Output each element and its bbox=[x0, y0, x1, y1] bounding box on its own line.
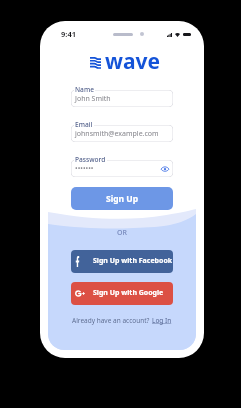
staticText: Already have an account? bbox=[72, 316, 152, 325]
staticText: Sign Up with Facebook bbox=[93, 256, 173, 266]
other: Show password bbox=[161, 166, 169, 172]
staticText: Sign Up with Google bbox=[93, 288, 164, 298]
staticText: OR bbox=[117, 228, 127, 238]
button[interactable]: Sign up with Facebook bbox=[71, 250, 173, 273]
staticText: 9:41 bbox=[61, 29, 76, 39]
other: Sign up with Facebook bbox=[75, 256, 82, 267]
staticText: Name bbox=[75, 85, 94, 94]
staticText: John Smith bbox=[75, 94, 111, 104]
staticText: Password bbox=[75, 155, 106, 164]
staticText: wave bbox=[105, 47, 161, 76]
staticText: Sign Up bbox=[106, 193, 139, 205]
button[interactable]: johnsmith@example.com bbox=[71, 125, 173, 142]
button[interactable]: ••••••• bbox=[71, 160, 173, 177]
other: Cellular signal bbox=[167, 33, 172, 37]
button[interactable]: John Smith bbox=[71, 90, 173, 107]
other: Wi-Fi bbox=[175, 33, 180, 37]
button[interactable]: Sign up with Google bbox=[71, 282, 173, 305]
other: Sign up with Google bbox=[75, 288, 86, 299]
staticText: johnsmith@example.com bbox=[75, 129, 159, 139]
staticText: Log In bbox=[152, 316, 172, 325]
button[interactable]: Already have an account? bbox=[71, 316, 173, 325]
staticText: Email bbox=[75, 120, 93, 129]
staticText: ••••••• bbox=[75, 164, 94, 174]
button[interactable]: Sign Up bbox=[71, 187, 173, 210]
